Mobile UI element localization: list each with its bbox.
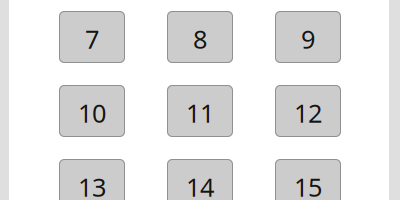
button[interactable]: 8 (167, 11, 233, 63)
button[interactable]: 10 (59, 85, 125, 137)
staticText: 10 (78, 96, 106, 130)
staticText: 8 (193, 22, 207, 56)
button[interactable]: 11 (167, 85, 233, 137)
staticText: 7 (85, 22, 99, 56)
staticText: 13 (78, 170, 106, 200)
button[interactable]: 14 (167, 159, 233, 200)
button[interactable]: 13 (59, 159, 125, 200)
button[interactable]: 15 (275, 159, 341, 200)
staticText: 11 (186, 96, 214, 130)
button[interactable]: 12 (275, 85, 341, 137)
staticText: 14 (186, 170, 214, 200)
staticText: 9 (301, 22, 315, 56)
button[interactable]: 7 (59, 11, 125, 63)
button[interactable]: 9 (275, 11, 341, 63)
staticText: 12 (294, 96, 322, 130)
staticText: 15 (294, 170, 322, 200)
